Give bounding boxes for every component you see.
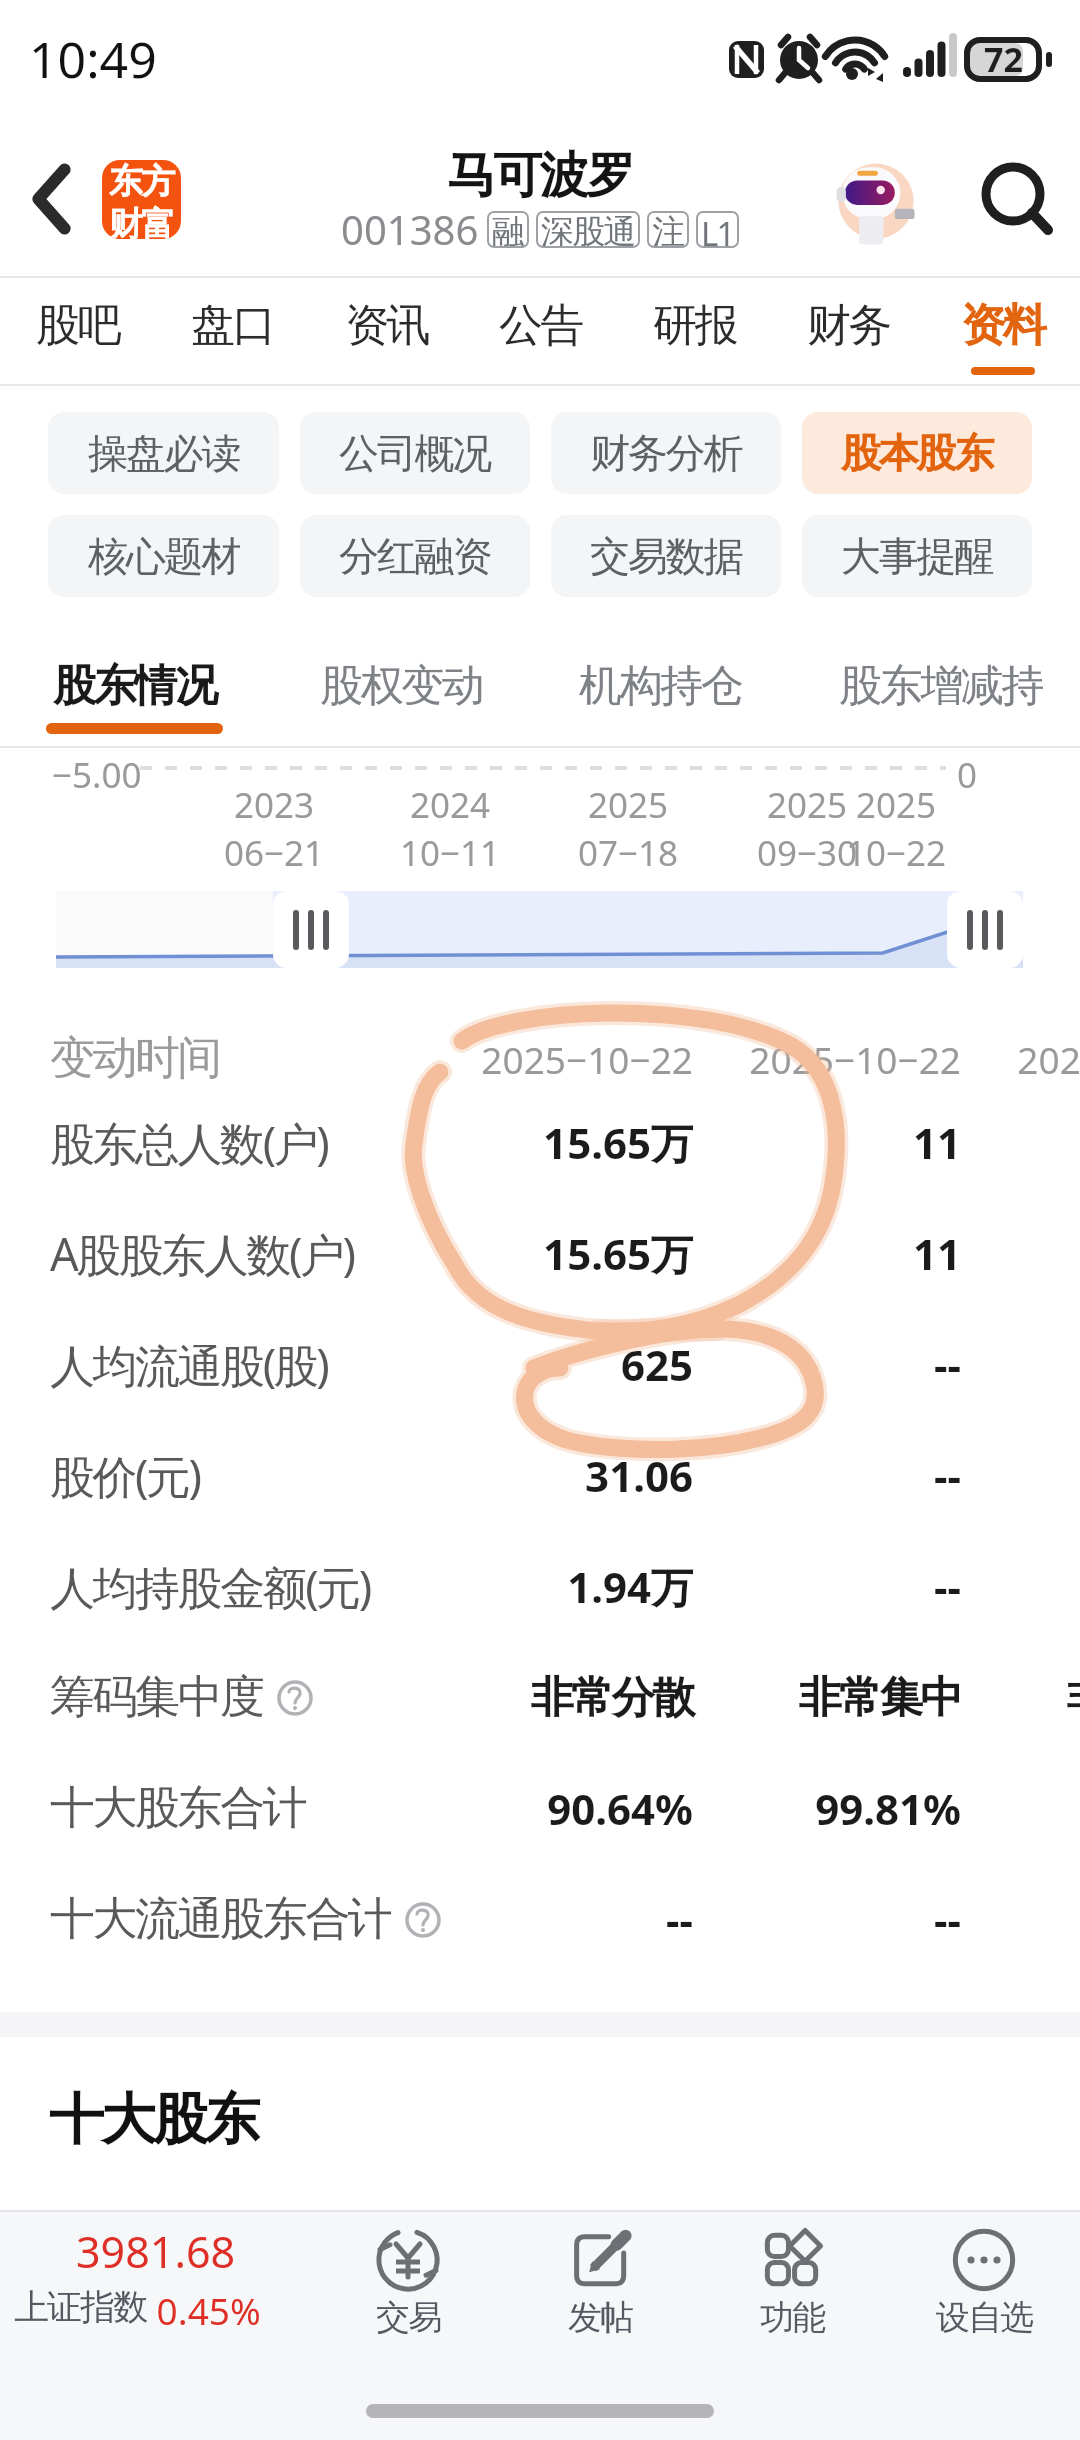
button[interactable]: Range handle	[947, 891, 1023, 968]
button[interactable]: AI assistant	[829, 157, 923, 251]
staticText: 财富	[109, 203, 174, 239]
staticText: 资料	[961, 298, 1045, 353]
button[interactable]: 大事提醒	[802, 515, 1032, 597]
staticText: −5.00	[52, 751, 142, 799]
button[interactable]: A股股东人数(户)	[0, 1198, 1080, 1309]
staticText: 股东总人数(户)	[50, 1112, 328, 1173]
staticText: 3981.68	[76, 2222, 236, 2281]
button[interactable]: 股权变动	[320, 623, 483, 748]
staticText: 发帖	[568, 2296, 633, 2339]
staticText: 10−11	[390, 829, 510, 877]
staticText: 06−21	[214, 829, 334, 877]
staticText: 公告	[499, 298, 583, 353]
staticText: 10−22	[836, 829, 956, 877]
staticText: 90.64%	[425, 1780, 693, 1837]
staticText: 2025−10−22	[425, 1034, 693, 1084]
staticText: 人均流通股(股)	[50, 1334, 328, 1395]
staticText: 0	[957, 751, 978, 799]
button[interactable]: 人均流通股(股)	[0, 1309, 1080, 1420]
staticText: 0.45%	[147, 2285, 261, 2335]
staticText: 09−30	[747, 829, 867, 877]
staticText: 001386	[341, 202, 479, 256]
staticText: 资讯	[345, 298, 429, 353]
staticText: 研报	[653, 298, 737, 353]
staticText: --	[693, 1891, 961, 1948]
staticText: L1	[701, 211, 734, 248]
button[interactable]: 3981.68	[0, 2222, 293, 2335]
staticText: 99.81%	[693, 1780, 961, 1837]
staticText: 07−18	[568, 829, 688, 877]
staticText: --	[693, 1336, 961, 1393]
button[interactable]: 资料	[926, 278, 1080, 386]
button[interactable]: 公司概况	[300, 412, 530, 494]
staticText: --	[693, 1558, 961, 1615]
staticText: 2025	[747, 781, 867, 829]
staticText: 财务	[807, 298, 891, 353]
staticText: 功能	[760, 2296, 825, 2339]
staticText: 2025−10−22	[961, 1034, 1080, 1084]
staticText: 机构持仓	[579, 659, 742, 713]
staticText: 人均持股金额(元)	[50, 1556, 370, 1617]
button[interactable]: 交易	[312, 2222, 504, 2339]
button[interactable]: 核心题材	[48, 515, 279, 597]
staticText: 变动时间	[50, 1030, 221, 1087]
button[interactable]: 股东情况	[46, 623, 223, 748]
button[interactable]: 机构持仓	[579, 623, 742, 748]
staticText: 2025	[836, 781, 956, 829]
button[interactable]: 财务分析	[551, 412, 781, 494]
staticText: 11	[693, 1225, 961, 1282]
staticText: 625	[425, 1336, 693, 1393]
button[interactable]: 股价(元)	[0, 1420, 1080, 1531]
button[interactable]: 人均持股金额(元)	[0, 1531, 1080, 1642]
staticText: 盘口	[191, 298, 275, 353]
button[interactable]: 发帖	[504, 2222, 696, 2339]
button[interactable]: Back	[5, 149, 105, 249]
button[interactable]: 财务	[772, 278, 926, 386]
staticText: 15.65万	[425, 1114, 693, 1171]
button[interactable]: 盘口	[155, 278, 310, 386]
button[interactable]: 功能	[696, 2222, 888, 2339]
button[interactable]: 研报	[618, 278, 772, 386]
staticText: 筹码集中度	[50, 1669, 263, 1726]
button[interactable]: 公告	[464, 278, 618, 386]
staticText: 马可波罗	[447, 145, 633, 207]
staticText: 非常集中	[961, 1671, 1080, 1725]
button[interactable]: 设自选	[888, 2222, 1080, 2339]
button[interactable]: 操盘必读	[48, 412, 279, 494]
staticText: 十大股东	[49, 2085, 257, 2154]
button[interactable]: 股吧	[0, 278, 155, 386]
staticText: 非常集中	[693, 1671, 961, 1725]
button[interactable]: Eastmoney home	[102, 160, 181, 239]
button[interactable]: 十大流通股东合计	[0, 1864, 1080, 1975]
staticText: 公司概况	[339, 428, 491, 478]
button[interactable]: 交易数据	[551, 515, 781, 597]
button[interactable]: 股本股东	[802, 412, 1032, 494]
staticText: 15.65万	[425, 1225, 693, 1282]
button[interactable]: 筹码集中度	[0, 1642, 1080, 1753]
button[interactable]: 分红融资	[300, 515, 530, 597]
button[interactable]: 十大股东合计	[0, 1753, 1080, 1864]
staticText: 10:49	[29, 25, 157, 93]
staticText: 融	[492, 211, 524, 248]
staticText: 东方	[109, 160, 174, 203]
staticText: 股吧	[36, 298, 120, 353]
staticText: --	[425, 1891, 693, 1948]
staticText: 注	[652, 211, 684, 248]
button[interactable]: Search	[965, 153, 1061, 249]
button[interactable]: Range handle	[273, 891, 349, 968]
staticText: 交易	[376, 2296, 441, 2339]
staticText: --	[693, 1447, 961, 1504]
staticText: 十大股东合计	[50, 1780, 306, 1837]
button[interactable]: 资讯	[310, 278, 464, 386]
button[interactable]: 股东总人数(户)	[0, 1087, 1080, 1198]
button[interactable]: 股东增减持	[839, 623, 1043, 748]
staticText: 核心题材	[88, 531, 240, 581]
staticText: A股股东人数(户)	[50, 1223, 354, 1284]
